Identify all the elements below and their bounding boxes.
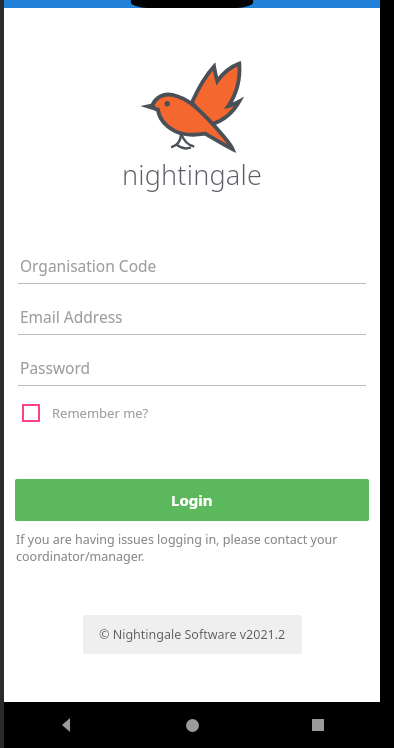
- button[interactable]: © Nightingale Software v2021.2: [83, 615, 302, 654]
- button[interactable]: Back: [4, 702, 130, 748]
- staticText: Login: [171, 490, 213, 510]
- staticText: Organisation Code: [20, 255, 157, 276]
- button[interactable]: Login: [15, 479, 369, 521]
- staticText: Email Address: [20, 306, 123, 327]
- button[interactable]: Organisation Code: [18, 255, 366, 284]
- button[interactable]: Email Address: [18, 306, 366, 335]
- staticText: Password: [20, 357, 91, 378]
- button[interactable]: Remember me?: [20, 400, 151, 426]
- button[interactable]: Recent apps: [255, 702, 380, 748]
- staticText: nightingale: [122, 156, 263, 193]
- button[interactable]: Password: [18, 357, 366, 386]
- button[interactable]: Home: [130, 702, 255, 748]
- staticText: Remember me?: [52, 404, 149, 422]
- staticText: If you are having issues logging in, ple…: [16, 531, 368, 564]
- staticText: © Nightingale Software v2021.2: [99, 626, 286, 643]
